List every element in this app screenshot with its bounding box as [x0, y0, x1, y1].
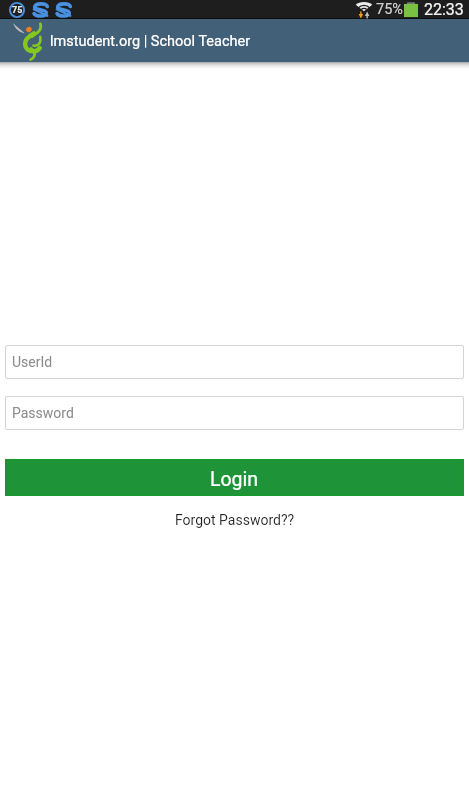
staticText: Login	[210, 468, 259, 491]
staticText: lmstudent.org | School Teacher	[50, 33, 251, 50]
staticText: 22:33	[424, 0, 464, 19]
button[interactable]: Password	[5, 396, 464, 430]
staticText: 75	[12, 5, 23, 16]
staticText: 75%	[376, 1, 403, 18]
staticText: UserId	[12, 354, 53, 370]
button[interactable]: UserId	[5, 345, 464, 379]
button[interactable]: lmstudent.org home	[19, 22, 42, 60]
button[interactable]: Login	[5, 459, 464, 496]
staticText: Password	[12, 405, 74, 421]
button[interactable]: Forgot Password??	[175, 512, 295, 528]
